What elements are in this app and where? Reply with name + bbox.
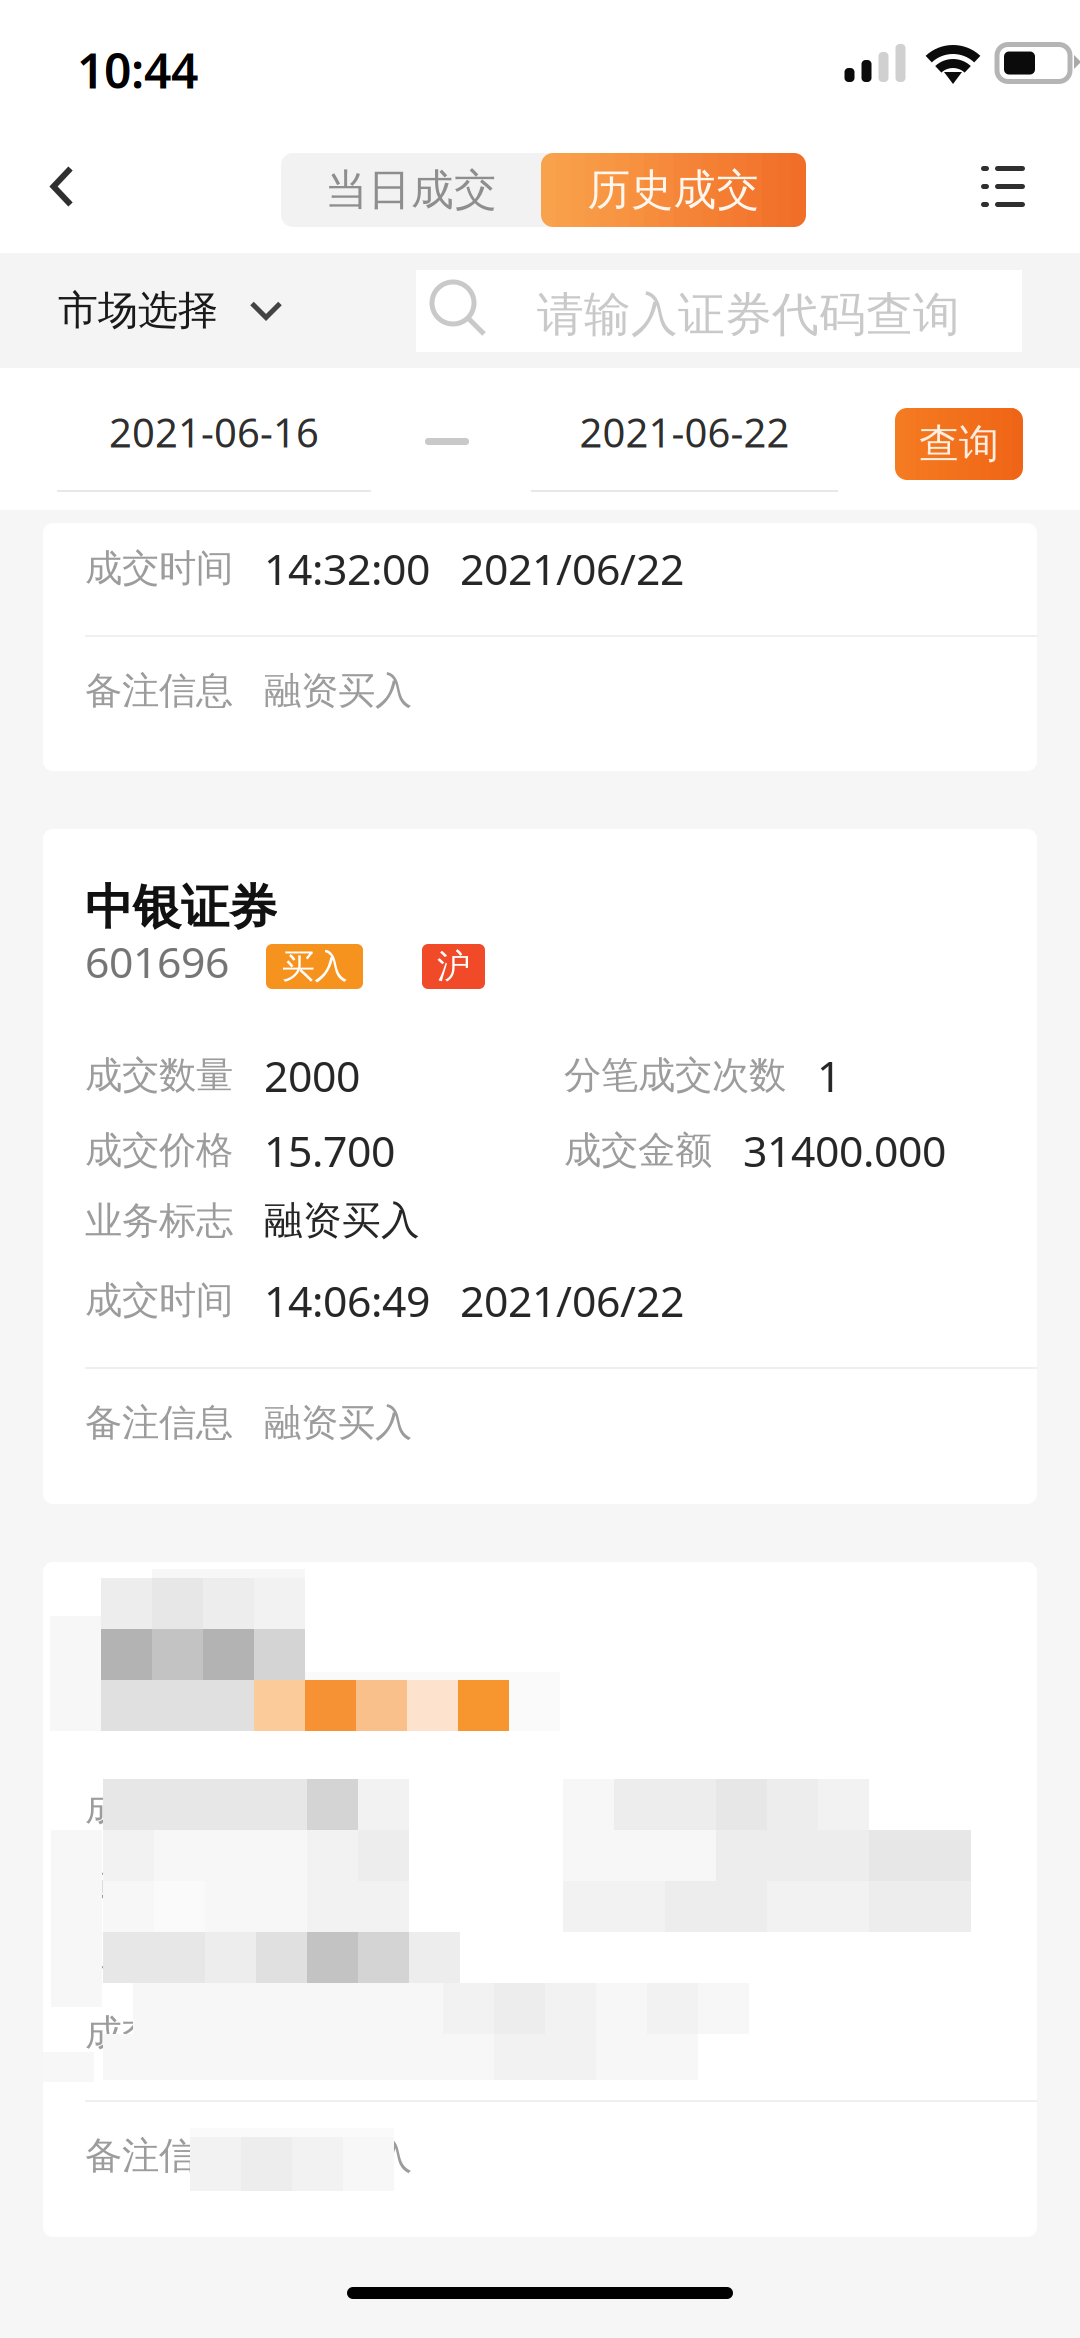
button[interactable]: 市场选择 <box>0 253 309 368</box>
staticText: 2021/06/22 <box>460 540 684 597</box>
staticText: 沪 <box>437 946 470 987</box>
button[interactable]: 当日成交 <box>281 153 541 227</box>
staticText: 沪 <box>437 1679 470 1720</box>
staticText: 15.700 <box>264 1855 395 1912</box>
staticText: 成交金额 <box>564 1127 712 1173</box>
staticText: 融资买入 <box>264 2133 412 2179</box>
staticText: 15.700 <box>264 1122 395 1179</box>
staticText: 历史成交 <box>587 164 759 216</box>
button[interactable]: Menu <box>948 120 1058 253</box>
staticText: 查询 <box>919 419 999 468</box>
staticText: 买入 <box>281 946 347 987</box>
staticText: 2021-06-22 <box>579 405 789 458</box>
staticText: 14:06:49 <box>264 1272 430 1329</box>
staticText: 融资买入 <box>264 1197 420 1244</box>
staticText: 备注信息 <box>85 2133 233 2179</box>
button[interactable]: 查询 <box>895 408 1023 480</box>
staticText: 备注信息 <box>85 1400 233 1446</box>
staticText: 融资买入 <box>264 1930 420 1977</box>
staticText: 分笔成交次数 <box>564 1785 786 1831</box>
staticText: 融资买入 <box>264 668 412 714</box>
staticText: 分笔成交次数 <box>564 1052 786 1098</box>
staticText: 2021/06/22 <box>460 2005 684 2062</box>
staticText: 成交价格 <box>85 1127 233 1173</box>
staticText: 成交价格 <box>85 1860 233 1906</box>
staticText: 2000 <box>264 1047 360 1104</box>
staticText: 31400.000 <box>743 1855 946 1912</box>
staticText: 中银证券 <box>85 878 277 937</box>
staticText: 当日成交 <box>325 164 497 216</box>
staticText: 业务标志 <box>85 1931 233 1977</box>
staticText: 1 <box>817 1047 841 1104</box>
staticText: 2021-06-16 <box>109 405 319 458</box>
button[interactable]: 2021-06-16 <box>57 368 371 492</box>
staticText: 601696 <box>85 1666 229 1723</box>
staticText: 市场选择 <box>58 286 218 335</box>
button[interactable]: Back <box>6 120 118 253</box>
staticText: 业务标志 <box>85 1198 233 1244</box>
button[interactable]: 中银证券 <box>43 829 1037 1504</box>
staticText: 31400.000 <box>743 1122 946 1179</box>
staticText: 2000 <box>264 1780 360 1837</box>
staticText: 10:44 <box>77 38 198 102</box>
staticText: 2021/06/22 <box>460 1272 684 1329</box>
staticText: 601696 <box>85 933 229 990</box>
staticText: 备注信息 <box>85 668 233 714</box>
staticText: 成交时间 <box>85 2010 233 2056</box>
staticText: 成交金额 <box>564 1860 712 1906</box>
staticText: 中银证券 <box>85 1611 277 1670</box>
staticText: 融资买入 <box>264 1400 412 1446</box>
staticText: 成交数量 <box>85 1052 233 1098</box>
staticText: 成交数量 <box>85 1785 233 1831</box>
staticText: 成交时间 <box>85 545 233 591</box>
button[interactable]: 中银证券 <box>43 1562 1037 2237</box>
staticText: 请输入证券代码查询 <box>537 286 960 343</box>
staticText: 成交时间 <box>85 1277 233 1323</box>
button[interactable]: 2021-06-22 <box>531 368 838 492</box>
button[interactable]: 历史成交 <box>541 153 806 227</box>
staticText: 买入 <box>281 1679 347 1720</box>
button[interactable]: 请输入证券代码查询 <box>416 270 1022 352</box>
staticText: 14:32:00 <box>264 540 430 597</box>
